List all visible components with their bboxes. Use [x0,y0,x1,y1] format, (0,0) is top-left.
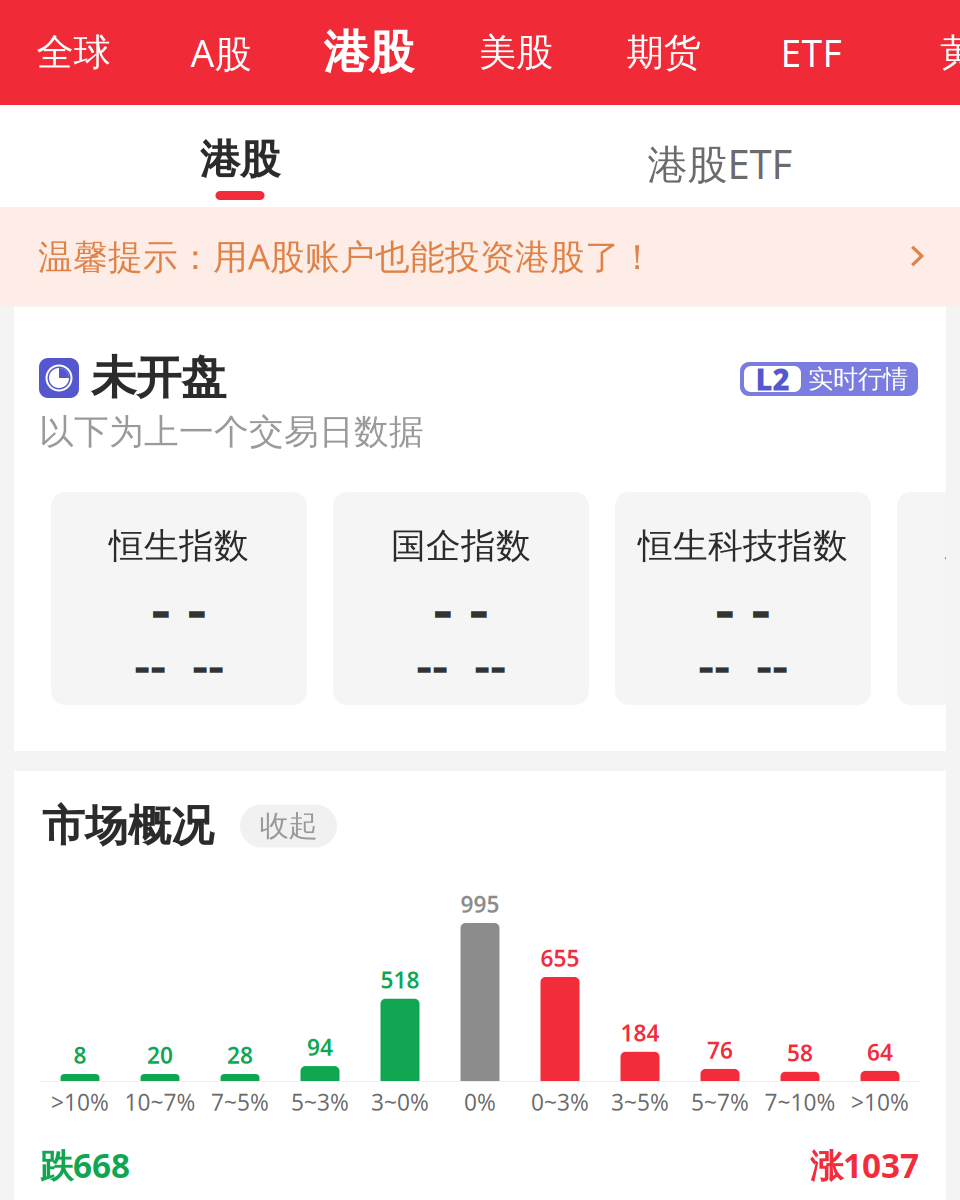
button[interactable]: ETF [737,0,884,105]
staticText: 5~3% [291,1087,349,1117]
staticText: 0% [464,1087,496,1117]
button[interactable]: 温馨提示：用A股账户也能投资港股了！ [0,207,960,305]
staticText: 期货 [626,30,700,75]
staticText: 94 [307,1032,333,1062]
staticText: 未开盘 [91,350,226,406]
staticText: 655 [540,943,579,973]
staticText: 8 [73,1040,86,1070]
staticText: 3~0% [371,1087,429,1117]
staticText: 全球 [36,30,110,75]
button[interactable]: 收起 [240,804,337,847]
staticText: 3~5% [611,1087,669,1117]
staticText: - - [715,566,771,648]
staticText: A股 [190,28,251,77]
staticText: 7~10% [764,1087,835,1117]
button[interactable]: 恒生指数 [51,492,307,705]
staticText: 58 [787,1038,813,1068]
button[interactable]: 全球 [0,0,147,105]
staticText: 港股 [200,135,280,184]
staticText: ETF [780,28,841,77]
staticText: 温馨提示：用A股账户也能投资港股了！ [38,233,655,279]
button[interactable]: 港股 [0,105,480,207]
staticText: 28 [227,1040,253,1070]
staticText: 518 [380,965,419,995]
staticText: - - [433,566,489,648]
staticText: >10% [51,1087,109,1117]
staticText: 涨1037 [810,1143,919,1187]
staticText: 实时行情 [808,363,908,394]
button[interactable]: 港股ETF [480,105,960,207]
staticText: 64 [867,1037,893,1067]
staticText: 收起 [259,808,317,844]
staticText: 港股 [323,25,413,80]
button[interactable]: 港股 [295,0,442,105]
button[interactable]: 期货 [590,0,737,105]
button[interactable]: 恒生科技指数 [615,492,871,705]
staticText: 184 [620,1018,659,1048]
staticText: 76 [707,1035,733,1065]
staticText: 0~3% [531,1087,589,1117]
staticText: 跌668 [40,1143,130,1187]
staticText: >10% [851,1087,909,1117]
staticText: 以下为上一个交易日数据 [39,411,424,453]
staticText: -- -- [134,630,224,698]
staticText: 20 [147,1040,173,1070]
button[interactable]: 国企指数 [333,492,589,705]
staticText: 市场概况 [42,800,214,852]
staticText: 恒生指数 [109,525,249,567]
staticText: 美股 [479,30,553,75]
button[interactable]: A股 [147,0,294,105]
staticText: L2 [755,359,789,398]
staticText: -- -- [698,630,788,698]
staticText: 黄 [940,30,960,75]
staticText: 恒生科技指数 [638,525,848,567]
button[interactable]: 美股 [442,0,589,105]
staticText: 国企指数 [391,525,531,567]
staticText: A股指数 [945,523,960,569]
staticText: -- -- [416,630,506,698]
staticText: 10~7% [124,1087,195,1117]
staticText: 5~7% [691,1087,749,1117]
staticText: 港股ETF [647,137,792,190]
button[interactable]: 黄 [885,0,960,105]
staticText: - - [151,566,207,648]
staticText: 995 [460,889,499,919]
staticText: 7~5% [211,1087,269,1117]
